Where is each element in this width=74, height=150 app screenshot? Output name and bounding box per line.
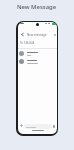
button[interactable]: To 146-644 xyxy=(20,41,35,45)
button[interactable] xyxy=(53,125,55,128)
staticText: New Message xyxy=(17,3,57,11)
staticText: New message xyxy=(27,33,47,37)
button[interactable] xyxy=(21,33,24,36)
button[interactable] xyxy=(18,59,57,64)
button[interactable]: Message xyxy=(24,124,52,129)
button[interactable] xyxy=(18,51,57,56)
staticText: Message xyxy=(26,125,36,128)
button[interactable] xyxy=(20,124,23,127)
